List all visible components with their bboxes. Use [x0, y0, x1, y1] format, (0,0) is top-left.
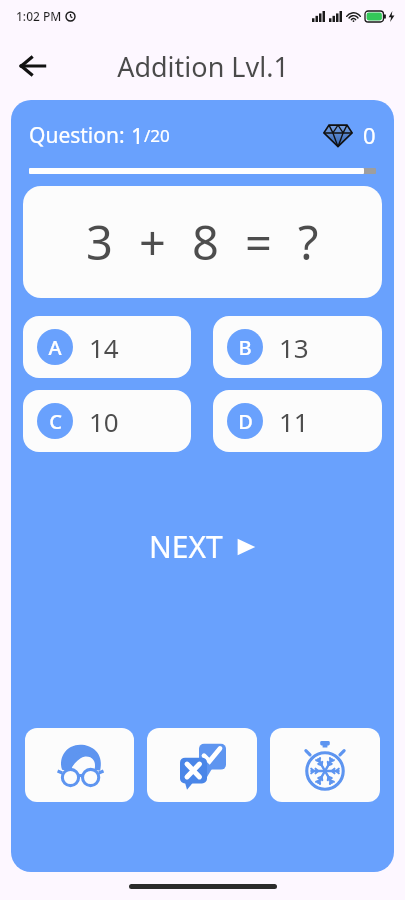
button[interactable]: D: [213, 390, 382, 452]
staticText: B: [238, 334, 252, 361]
staticText: +: [139, 210, 166, 274]
staticText: /20: [144, 124, 170, 147]
button[interactable]: NEXT: [137, 520, 269, 573]
button[interactable]: A: [23, 316, 191, 378]
staticText: D: [238, 408, 253, 435]
button[interactable]: Fifty fifty: [147, 728, 257, 802]
staticText: =: [245, 210, 272, 274]
staticText: 13: [279, 330, 309, 365]
button[interactable]: Back: [8, 42, 56, 90]
button[interactable]: Freeze timer: [270, 728, 380, 802]
staticText: C: [49, 408, 62, 435]
staticText: 8: [192, 210, 219, 274]
button[interactable]: C: [23, 390, 191, 452]
staticText: 11: [279, 404, 309, 439]
staticText: 3: [86, 210, 113, 274]
staticText: Question:: [29, 121, 131, 150]
staticText: 1:02 PM: [16, 8, 62, 24]
staticText: 10: [89, 404, 119, 439]
staticText: NEXT: [149, 526, 223, 567]
button[interactable]: Hint: [25, 728, 134, 802]
button[interactable]: B: [213, 316, 382, 378]
staticText: Addition Lvl.1: [117, 48, 289, 85]
staticText: ?: [298, 210, 319, 274]
staticText: 1: [131, 120, 144, 150]
staticText: 0: [363, 120, 376, 150]
staticText: A: [48, 334, 62, 361]
staticText: 14: [89, 330, 119, 365]
